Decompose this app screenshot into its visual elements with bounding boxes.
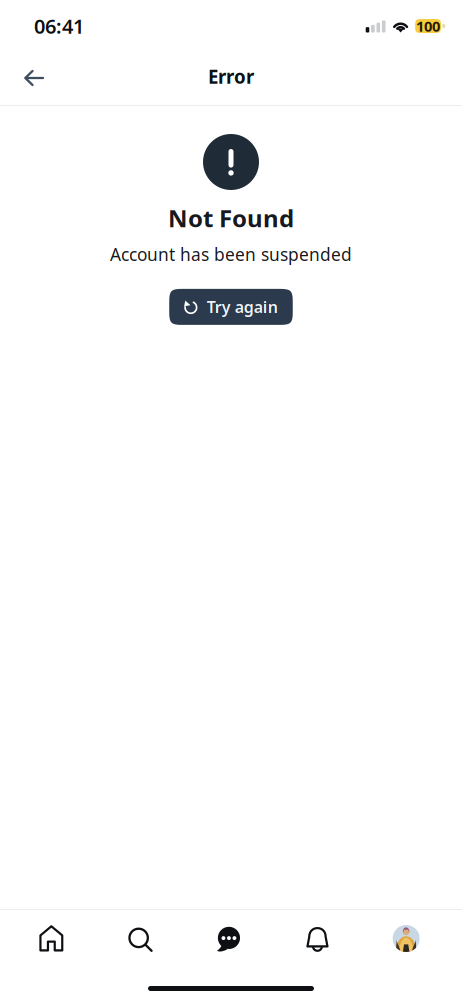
button[interactable]: Messages — [184, 912, 273, 964]
staticText: Error — [208, 64, 254, 89]
staticText: 100 — [416, 16, 440, 36]
staticText: Try again — [207, 296, 278, 317]
button[interactable]: Back — [12, 56, 56, 100]
staticText: Not Found — [168, 202, 294, 234]
button[interactable]: Search — [96, 912, 184, 964]
button[interactable]: Profile — [362, 912, 450, 964]
button[interactable]: Try again — [169, 289, 293, 325]
staticText: 06:41 — [34, 13, 84, 39]
staticText: Account has been suspended — [110, 243, 352, 266]
button[interactable]: Home — [7, 912, 96, 964]
button[interactable]: Notifications — [273, 912, 362, 964]
